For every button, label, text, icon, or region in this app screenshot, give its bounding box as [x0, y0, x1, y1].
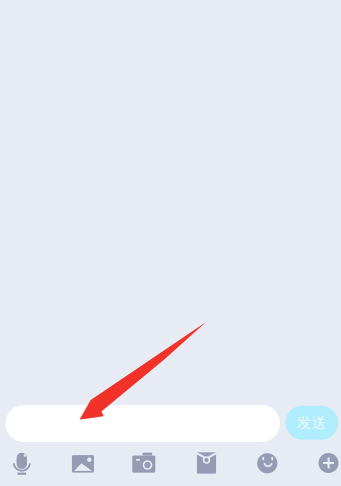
button[interactable]: Photos	[71, 450, 95, 476]
button[interactable]: Emoji	[255, 450, 279, 476]
button[interactable]	[5, 405, 280, 442]
button[interactable]: Camera	[132, 450, 156, 476]
button[interactable]: Voice message	[10, 450, 34, 476]
button[interactable]: 发送	[285, 406, 338, 440]
button[interactable]: More	[316, 450, 340, 476]
button[interactable]: Red packet	[194, 450, 218, 476]
staticText: 发送	[297, 414, 327, 432]
